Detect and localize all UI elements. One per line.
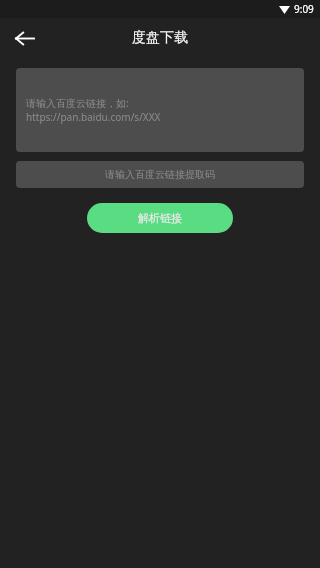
staticText: https://pan.baidu.com/s/XXX (26, 110, 161, 124)
button[interactable]: 解析链接 (87, 203, 233, 233)
staticText: 度盘下载 (132, 29, 188, 47)
staticText: 请输入百度云链接，如: (26, 96, 129, 110)
button[interactable]: Back (6, 20, 42, 56)
button[interactable]: 请输入百度云链接提取码 (16, 161, 304, 188)
staticText: 9:09 (294, 2, 314, 16)
staticText: 请输入百度云链接提取码 (105, 168, 215, 181)
button[interactable]: 请输入百度云链接，如: (16, 68, 304, 152)
staticText: 解析链接 (138, 211, 182, 225)
